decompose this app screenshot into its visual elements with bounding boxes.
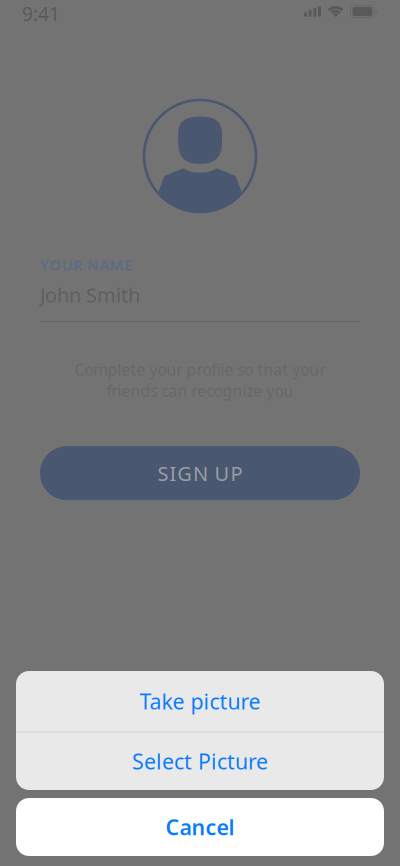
- staticText: Take picture: [139, 687, 260, 715]
- staticText: Select Picture: [132, 747, 268, 775]
- button[interactable]: Select Picture: [16, 732, 384, 790]
- staticText: friends can recognize you: [106, 380, 293, 401]
- staticText: John Smith: [40, 281, 140, 308]
- button[interactable]: Take picture: [16, 671, 384, 731]
- staticText: SIGN UP: [158, 460, 242, 486]
- button[interactable]: SIGN UP: [40, 446, 360, 500]
- staticText: Cancel: [165, 813, 234, 841]
- button[interactable]: Cancel: [16, 798, 384, 856]
- staticText: Complete your profile so that your: [74, 359, 325, 380]
- staticText: YOUR NAME: [40, 255, 132, 274]
- staticText: 9:41: [22, 0, 60, 27]
